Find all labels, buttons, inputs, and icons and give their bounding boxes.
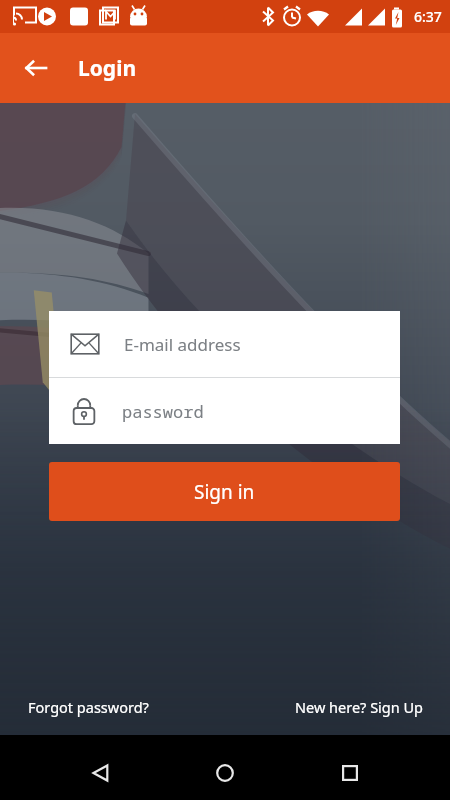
button[interactable]: Password field: [49, 378, 400, 444]
button[interactable]: New here? Sign Up: [295, 693, 424, 721]
staticText: E-mail address: [124, 333, 241, 356]
staticText: password: [122, 400, 204, 423]
button[interactable]: Recent apps: [326, 749, 374, 797]
staticText: 6:37: [414, 7, 442, 26]
staticText: Login: [78, 54, 137, 83]
button[interactable]: E-mail address field: [49, 311, 400, 377]
staticText: Sign in: [194, 479, 255, 505]
button[interactable]: Home: [201, 749, 249, 797]
button[interactable]: Sign in: [49, 462, 400, 521]
button[interactable]: Back: [77, 749, 125, 797]
staticText: New here? Sign Up: [295, 697, 424, 717]
staticText: Forgot password?: [28, 697, 149, 717]
button[interactable]: Back: [12, 44, 60, 92]
button[interactable]: Forgot password?: [28, 693, 149, 721]
